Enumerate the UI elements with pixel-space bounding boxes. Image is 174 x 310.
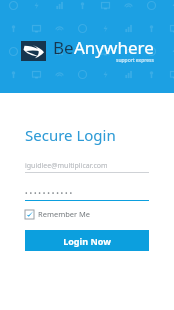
button[interactable]: iguidlee@multiplicar.com [25,159,149,173]
staticText: Remember Me [38,209,91,219]
staticText: Login Now [63,235,111,247]
staticText: • • • • • • • • • • • [25,189,73,199]
staticText: support express [116,57,154,64]
staticText: Secure Login [25,125,116,145]
staticText: Anywhere [74,36,154,59]
button[interactable]: • • • • • • • • • • • [25,187,149,201]
button[interactable]: Remember Me [25,208,91,220]
other: BeAnywhere logo [21,41,46,61]
button[interactable]: Login Now [25,230,149,251]
staticText: iguidlee@multiplicar.com [25,161,108,171]
staticText: Be [53,36,74,59]
